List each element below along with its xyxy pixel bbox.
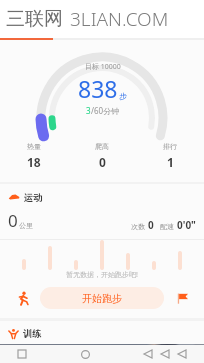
staticText: /60分钟 <box>91 105 120 116</box>
staticText: 838 <box>78 73 118 104</box>
staticText: 三联网 <box>6 7 63 31</box>
other: 运动 <box>8 191 20 203</box>
button[interactable]: Home <box>77 346 93 362</box>
button[interactable]: 排行 <box>136 140 204 172</box>
button[interactable]: 训练 <box>0 321 204 344</box>
staticText: 3 <box>86 105 91 116</box>
staticText: 0'0" <box>177 218 196 232</box>
staticText: 次数 <box>131 222 145 231</box>
staticText: 目标 10000 <box>85 62 121 72</box>
staticText: 3LIAN.COM <box>70 6 169 32</box>
staticText: 公里 <box>19 221 33 230</box>
button[interactable]: 开始跑步 <box>40 287 164 309</box>
button[interactable]: Back <box>157 346 173 362</box>
button[interactable]: Back <box>174 346 190 362</box>
staticText: 0 <box>148 218 154 232</box>
staticText: 0 <box>99 154 106 170</box>
staticText: 步 <box>119 91 127 101</box>
staticText: 排行 <box>163 142 177 151</box>
button[interactable]: Back <box>140 346 156 362</box>
staticText: 18 <box>27 154 41 170</box>
staticText: 热量 <box>27 142 41 151</box>
button[interactable]: 热量 <box>0 140 68 172</box>
staticText: 配速 <box>160 222 174 231</box>
staticText: 暂无数据，开始跑步吧! <box>66 270 138 280</box>
staticText: 运动 <box>24 192 42 203</box>
staticText: 爬高 <box>95 142 109 151</box>
button[interactable]: Recents <box>14 346 30 362</box>
staticText: 开始跑步 <box>82 292 122 305</box>
button[interactable]: 爬高 <box>68 140 136 172</box>
button[interactable]: 运动 <box>0 184 204 203</box>
staticText: 1 <box>167 154 174 170</box>
staticText: 0 <box>8 209 18 232</box>
staticText: 训练 <box>23 328 41 339</box>
button[interactable]: 目标 <box>170 286 194 310</box>
other: 训练 <box>8 328 19 339</box>
button[interactable] <box>0 344 204 345</box>
button[interactable]: 跑步记录 <box>10 286 34 310</box>
